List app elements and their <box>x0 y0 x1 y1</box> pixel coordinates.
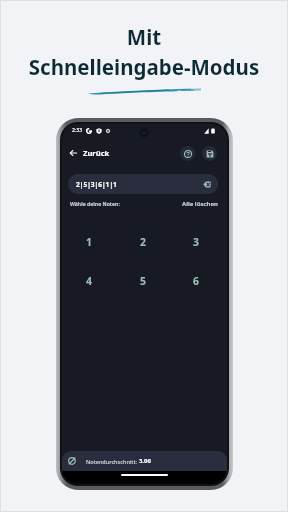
staticText: 5 <box>140 274 146 288</box>
button[interactable]: 2|5|3|6|1|1 <box>68 174 218 194</box>
staticText: 3.00 <box>139 457 151 465</box>
staticText: 6 <box>193 274 199 288</box>
staticText: 2|5|3|6|1|1 <box>76 180 117 189</box>
button[interactable]: Hilfe <box>180 146 195 161</box>
button[interactable]: Speichern <box>202 146 217 161</box>
staticText: Notendurchschnitt: <box>86 458 139 465</box>
button[interactable]: Notendurchschnitt: <box>62 451 227 471</box>
staticText: 2:33 <box>72 127 83 134</box>
staticText: 3 <box>193 235 199 249</box>
staticText: 4 <box>86 274 92 288</box>
staticText: Zurück <box>83 148 110 158</box>
button[interactable]: 1 <box>62 222 116 261</box>
staticText: 2 <box>140 235 146 249</box>
staticText: Wähle deine Noten: <box>70 201 120 208</box>
button[interactable]: 4 <box>62 261 116 300</box>
button[interactable]: 5 <box>116 261 169 300</box>
button[interactable]: 3 <box>169 222 222 261</box>
button[interactable]: 6 <box>169 261 222 300</box>
staticText: 1 <box>86 235 92 249</box>
staticText: Alle löschen <box>182 200 218 208</box>
button[interactable]: 2 <box>116 222 169 261</box>
staticText: Mit Schnelleingabe-Modus <box>1 23 287 81</box>
button[interactable]: Alle löschen <box>182 200 218 208</box>
button[interactable]: Zurück <box>66 146 80 160</box>
